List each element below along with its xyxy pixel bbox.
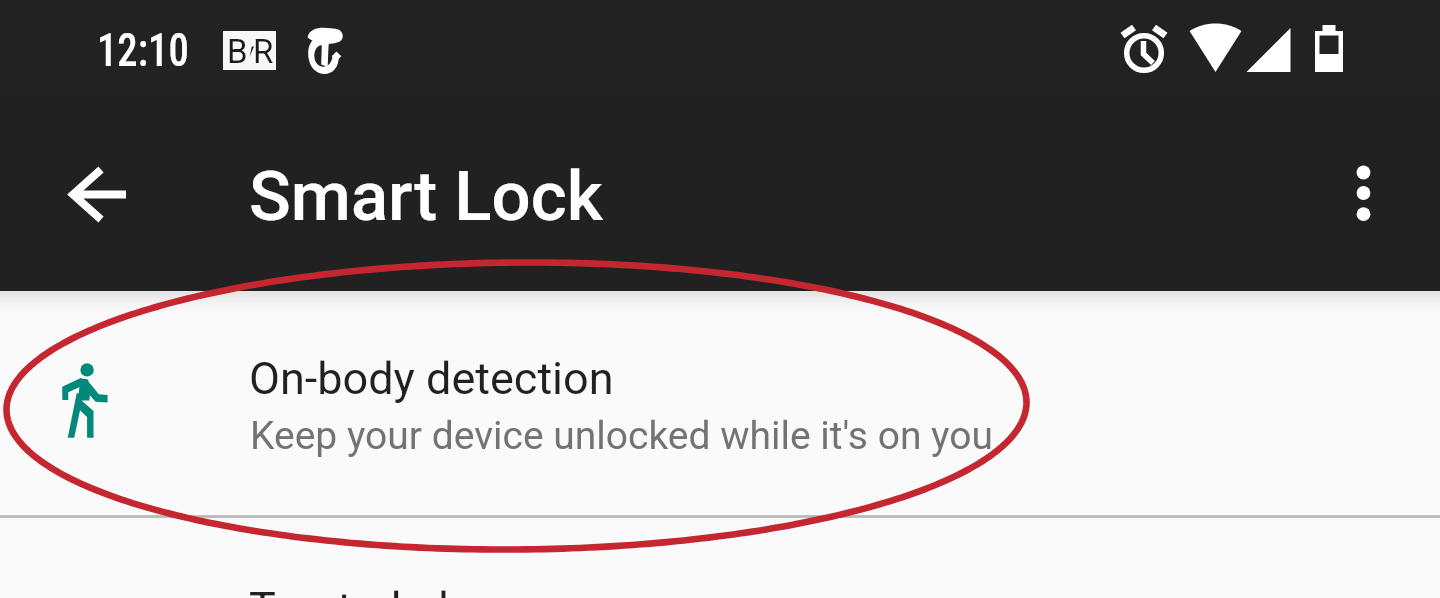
button[interactable]: Back: [52, 149, 142, 239]
staticText: 12:10: [97, 23, 189, 77]
button[interactable]: On-body detection: [0, 291, 1440, 515]
button[interactable]: More options: [1319, 149, 1408, 238]
staticText: Smart Lock: [249, 156, 603, 237]
staticText: Keep your device unlocked while it's on …: [250, 413, 993, 459]
staticText: B: [227, 32, 248, 71]
staticText: R: [253, 32, 274, 71]
staticText: On-body detection: [249, 352, 614, 405]
staticText: Trusted places: [249, 582, 544, 598]
button[interactable]: Trusted places: [0, 518, 1440, 598]
